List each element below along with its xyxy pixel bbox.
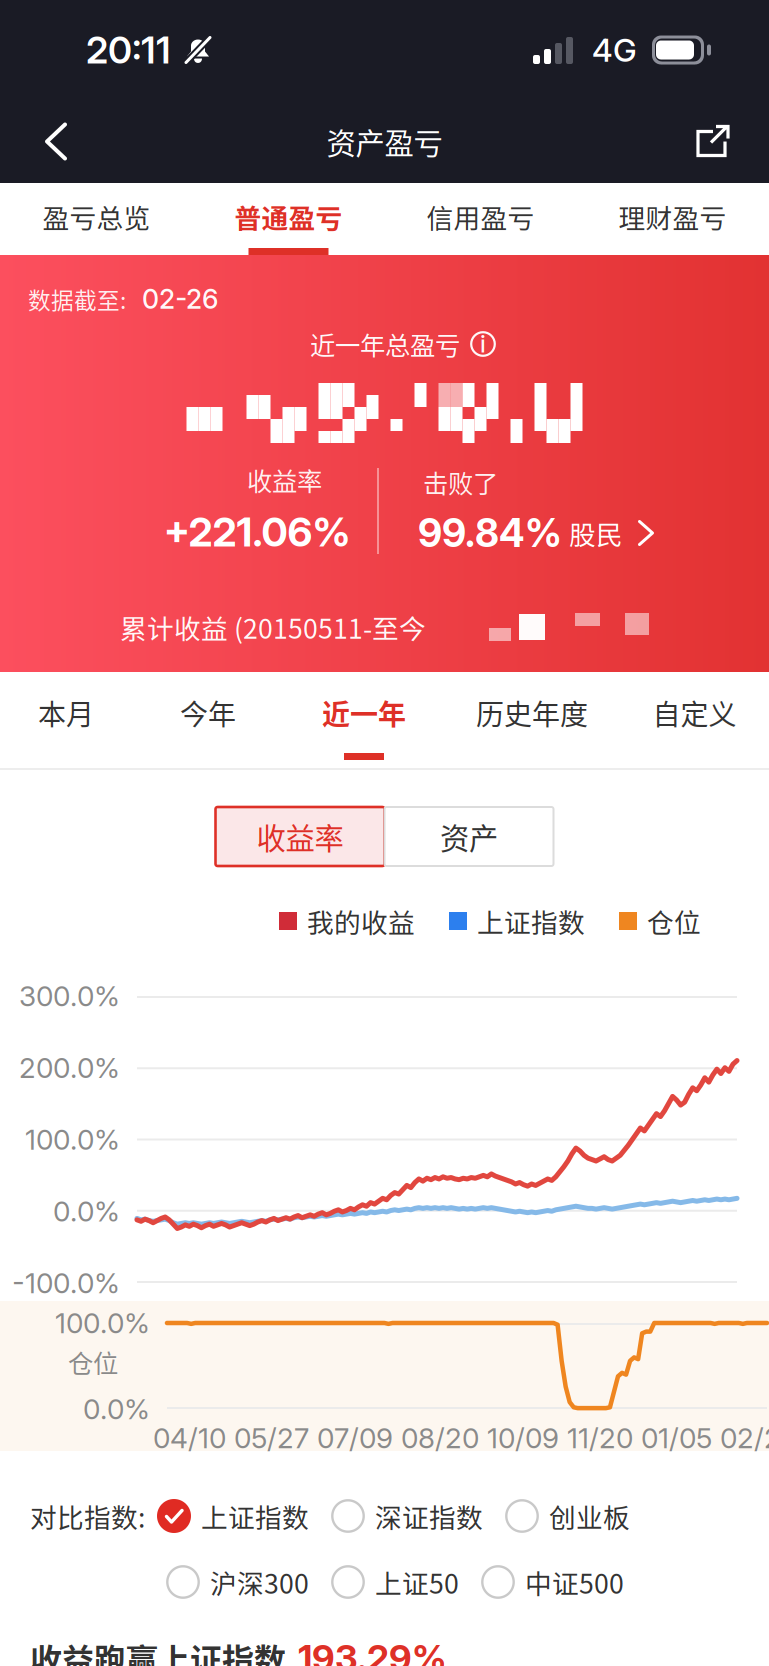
staticText: 上证50 <box>375 1563 459 1601</box>
button[interactable]: 盈亏总览 <box>0 183 192 255</box>
button[interactable]: 上证指数 <box>157 1497 309 1535</box>
staticText: 中证500 <box>525 1563 624 1601</box>
button[interactable]: 理财盈亏 <box>576 183 768 255</box>
button[interactable]: Back <box>14 100 98 183</box>
staticText: 理财盈亏 <box>618 197 726 236</box>
staticText: 300.0% <box>19 979 120 1013</box>
staticText: 盈亏总览 <box>42 197 150 236</box>
staticText: 创业板 <box>549 1497 630 1535</box>
staticText: 100.0% <box>25 1123 120 1156</box>
staticText: 沪深300 <box>210 1563 309 1601</box>
staticText: 对比指数: <box>30 1497 145 1535</box>
staticText: 收益率 <box>256 815 343 858</box>
staticText: 近一年 <box>322 692 406 733</box>
staticText: 本月 <box>38 692 94 733</box>
button[interactable]: 深证指数 <box>331 1497 483 1535</box>
staticText: 20:11 <box>86 27 171 73</box>
button[interactable]: 历史年度 <box>444 672 620 768</box>
staticText: 仓位 <box>68 1344 118 1380</box>
staticText: 193.29% <box>298 1636 447 1666</box>
staticText: 信用盈亏 <box>426 197 534 236</box>
button[interactable]: 近一年 <box>284 672 444 768</box>
staticText: 资产 <box>440 815 498 858</box>
staticText: 05/27 <box>234 1421 309 1455</box>
staticText: 累计收益 (20150511-至今 <box>120 608 426 646</box>
staticText: +221.06% <box>163 508 350 556</box>
button[interactable]: 中证500 <box>481 1563 624 1601</box>
staticText: 07/09 <box>317 1421 393 1455</box>
staticText: 08/20 <box>401 1421 479 1455</box>
staticText: 普通盈亏 <box>234 197 342 236</box>
button[interactable]: 今年 <box>132 672 284 768</box>
button[interactable]: 沪深300 <box>166 1563 309 1601</box>
button[interactable]: 收益率 <box>215 807 384 866</box>
staticText: 历史年度 <box>476 692 588 733</box>
staticText: 99.84% <box>418 510 562 556</box>
staticText: 我的收益 <box>307 902 415 940</box>
button[interactable]: 本月 <box>0 672 132 768</box>
button[interactable]: 创业板 <box>505 1497 630 1535</box>
staticText: 02-26 <box>142 283 218 315</box>
button[interactable]: 自定义 <box>620 672 769 768</box>
staticText: 击败了 <box>423 464 498 500</box>
staticText: 收益跑赢上证指数 <box>30 1635 286 1666</box>
staticText: 01/05 <box>641 1421 712 1455</box>
staticText: 04/10 <box>153 1421 226 1455</box>
staticText: 10/09 <box>487 1421 559 1455</box>
staticText: 上证指数 <box>477 902 585 940</box>
staticText: 今年 <box>180 692 236 733</box>
staticText: 上证指数 <box>201 1497 309 1535</box>
button[interactable]: 上证50 <box>331 1563 459 1601</box>
button[interactable]: 信用盈亏 <box>384 183 576 255</box>
staticText: 0.0% <box>83 1392 150 1426</box>
staticText: 自定义 <box>652 692 736 733</box>
button[interactable]: 普通盈亏 <box>192 183 384 255</box>
staticText: 100.0% <box>55 1306 150 1340</box>
staticText: 收益率 <box>247 461 322 498</box>
button[interactable]: Share <box>671 100 755 183</box>
staticText: 02/2 <box>720 1421 769 1455</box>
staticText: 200.0% <box>19 1051 120 1085</box>
staticText: 资产盈亏 <box>326 120 442 163</box>
button[interactable]: 资产 <box>384 807 553 866</box>
staticText: 近一年总盈亏 <box>310 326 460 362</box>
staticText: 仓位 <box>647 902 701 940</box>
staticText: 股民 <box>569 514 623 552</box>
staticText: 数据截至: <box>28 283 126 315</box>
staticText: 深证指数 <box>375 1497 483 1535</box>
staticText: 4G <box>592 31 637 69</box>
staticText: -100.0% <box>12 1266 120 1300</box>
staticText: 11/20 <box>567 1421 633 1455</box>
staticText: 0.0% <box>53 1194 120 1228</box>
staticText: i <box>480 330 486 358</box>
